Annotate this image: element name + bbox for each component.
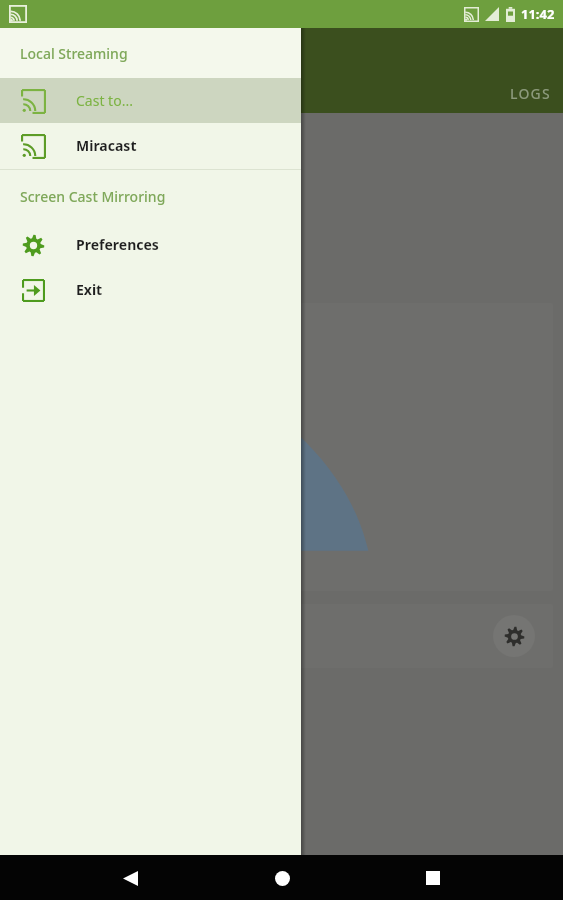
button[interactable]: Recents [411,856,455,900]
button[interactable]: PAUSED [10,303,553,591]
button[interactable]: Home [260,856,304,900]
button[interactable]: Cast to... [0,78,301,123]
staticText: Preferences [76,235,159,254]
button[interactable]: Miracast [0,123,301,168]
button[interactable]: Exit [0,267,301,312]
staticText: Local Streaming [20,44,128,63]
staticText: Miracast [76,136,137,155]
button[interactable]: Settings [493,615,535,657]
staticText: Exit [76,280,103,299]
staticText: Screen Cast Mirroring [20,187,166,206]
staticText: Cast to... [76,91,133,110]
button[interactable]: Back [108,856,152,900]
button[interactable]: LOGS [510,84,551,103]
staticText: 11:42 [521,5,555,23]
button[interactable]: Preferences [0,222,301,267]
button[interactable]: e of your choice. [10,604,553,668]
